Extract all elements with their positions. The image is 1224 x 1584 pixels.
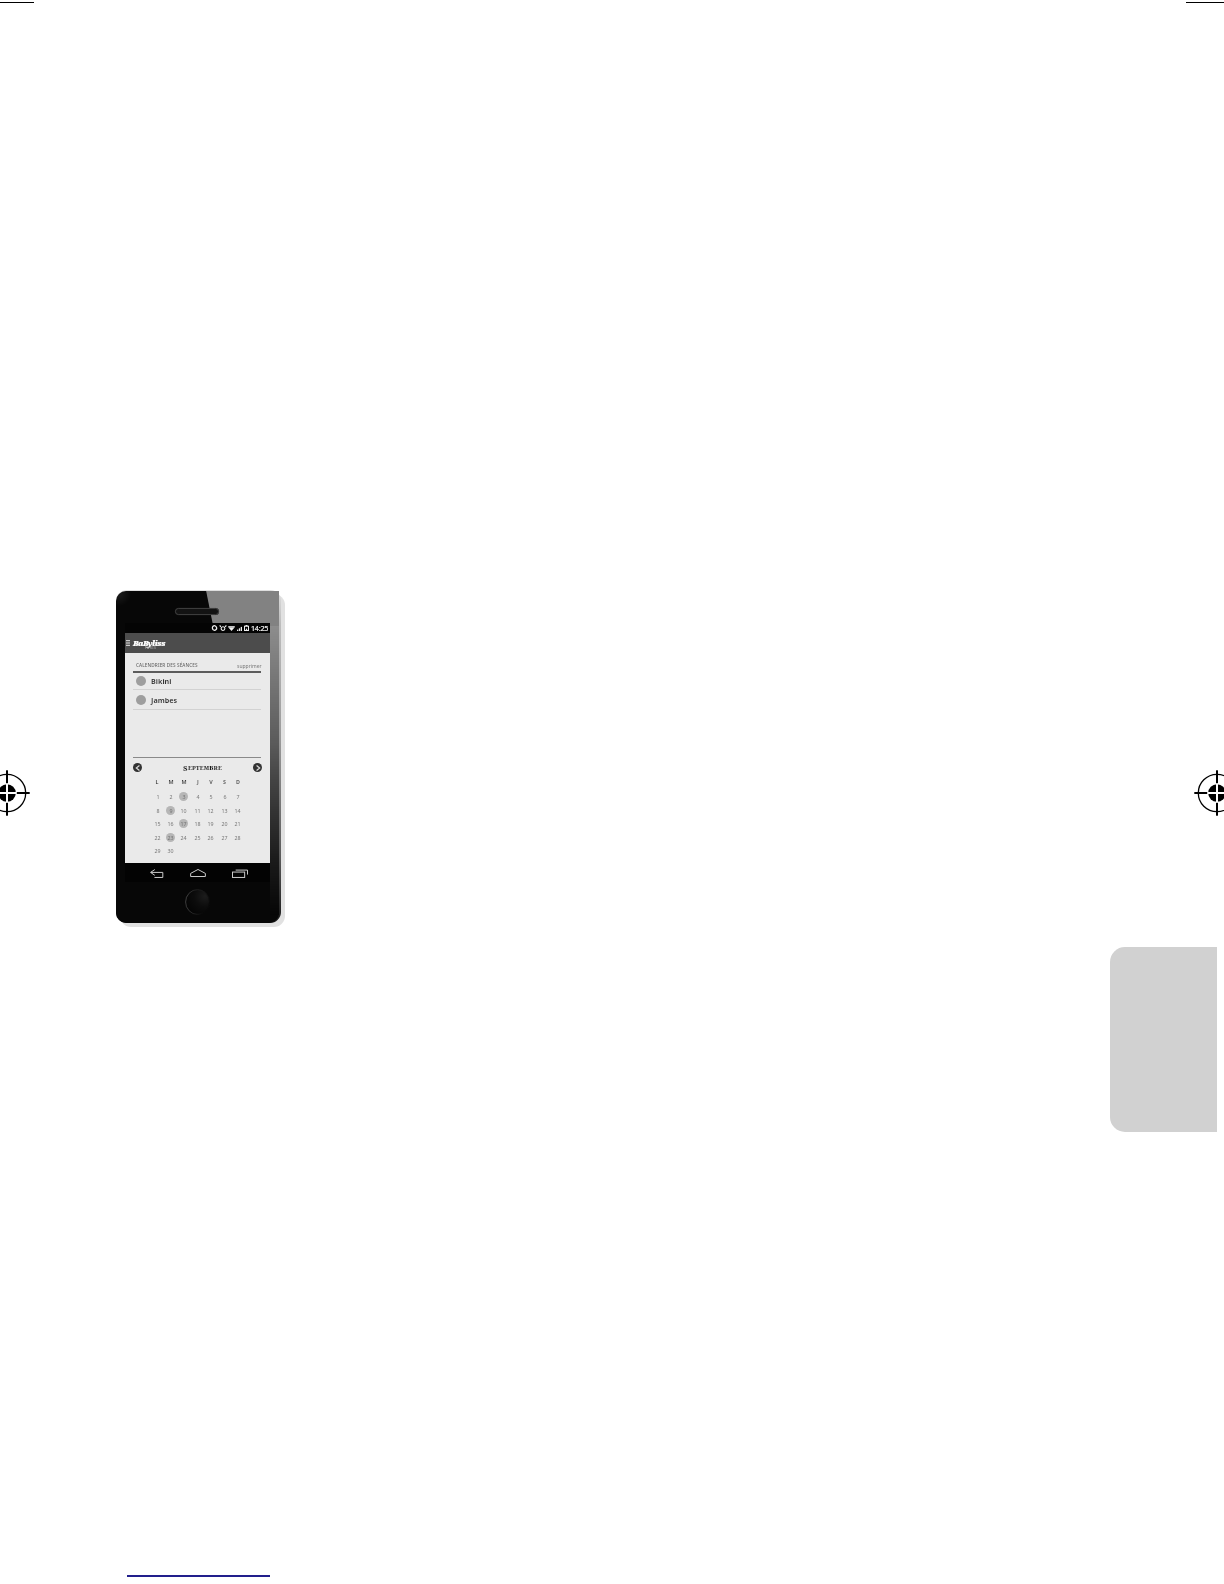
button[interactable]: 18 [193,819,202,828]
button[interactable]: Applications récentes [231,868,248,878]
staticText: J [197,778,199,785]
staticText: EPTEMBRE [188,764,222,772]
staticText: 14 [234,807,241,814]
button[interactable]: 1 [153,792,162,801]
button[interactable]: 14 [233,806,242,815]
button[interactable]: 22 [153,833,162,842]
staticText: BaByliss [133,638,165,648]
button[interactable]: 25 [193,833,202,842]
button[interactable]: 13 [220,806,229,815]
staticText: 27 [221,834,228,841]
button[interactable]: 28 [233,833,242,842]
button[interactable]: 30 [166,846,175,855]
staticText: V [209,778,213,785]
button[interactable]: 29 [153,846,162,855]
button[interactable]: 15 [153,819,162,828]
button[interactable]: 16 [166,819,175,828]
staticText: 18 [194,820,201,827]
staticText: 20 [221,820,228,827]
button[interactable]: Accueil [189,868,206,878]
staticText: S [183,763,188,773]
staticText: 21 [234,820,241,827]
button[interactable]: 20 [220,819,229,828]
staticText: 10 [180,807,187,814]
button[interactable]: 8 [153,806,162,815]
staticText: 7 [236,793,240,800]
button[interactable]: 23 [166,833,175,842]
button[interactable]: Retour [149,868,166,878]
staticText: 3 [182,793,186,800]
button[interactable]: 3 [179,792,188,801]
staticText: 8 [156,807,160,814]
staticText: 5 [209,793,213,800]
staticText: M [168,778,174,785]
button[interactable]: Mois suivant [253,763,262,772]
button[interactable]: 21 [233,819,242,828]
staticText: M [181,778,187,785]
staticText: 6 [223,793,227,800]
button[interactable]: 7 [233,792,242,801]
staticText: 9 [169,807,173,814]
staticText: Jambes [151,695,178,705]
button[interactable]: 27 [220,833,229,842]
button[interactable]: 2 [166,792,175,801]
button[interactable]: 6 [220,792,229,801]
staticText: 25 [194,834,201,841]
staticText: 14:25 [251,623,269,633]
button[interactable]: 19 [206,819,215,828]
staticText: 12 [207,807,214,814]
button[interactable]: 4 [193,792,202,801]
button[interactable]: 11 [193,806,202,815]
button[interactable]: 5 [206,792,215,801]
button[interactable]: Mois précédent [133,763,142,772]
button[interactable]: Menu [125,637,133,648]
staticText: 24 [180,834,187,841]
button[interactable]: Jambes [133,690,261,709]
button[interactable]: 17 [179,819,188,828]
staticText: L [155,778,159,785]
staticText: D [236,778,240,785]
button[interactable]: 10 [179,806,188,815]
staticText: CALENDRIER DES SÉANCES [136,662,198,668]
button[interactable]: 24 [179,833,188,842]
button[interactable]: 26 [206,833,215,842]
staticText: 15 [154,820,161,827]
staticText: 16 [167,820,174,827]
staticText: 4 [196,793,200,800]
staticText: 29 [154,847,161,854]
button[interactable]: Bikini [133,671,261,690]
staticText: 26 [207,834,214,841]
button[interactable]: 12 [206,806,215,815]
staticText: 1 [156,793,160,800]
staticText: 19 [207,820,214,827]
staticText: 30 [167,847,174,854]
staticText: Bikini [151,676,172,686]
button[interactable]: 9 [166,806,175,815]
button[interactable]: supprimer [237,663,262,670]
staticText: 23 [167,834,174,841]
staticText: 2 [169,793,173,800]
staticText: 22 [154,834,161,841]
staticText: PARIS [145,646,157,650]
staticText: S [223,778,226,785]
staticText: 28 [234,834,241,841]
staticText: 17 [180,820,187,827]
staticText: 11 [194,807,201,814]
staticText: 13 [221,807,228,814]
